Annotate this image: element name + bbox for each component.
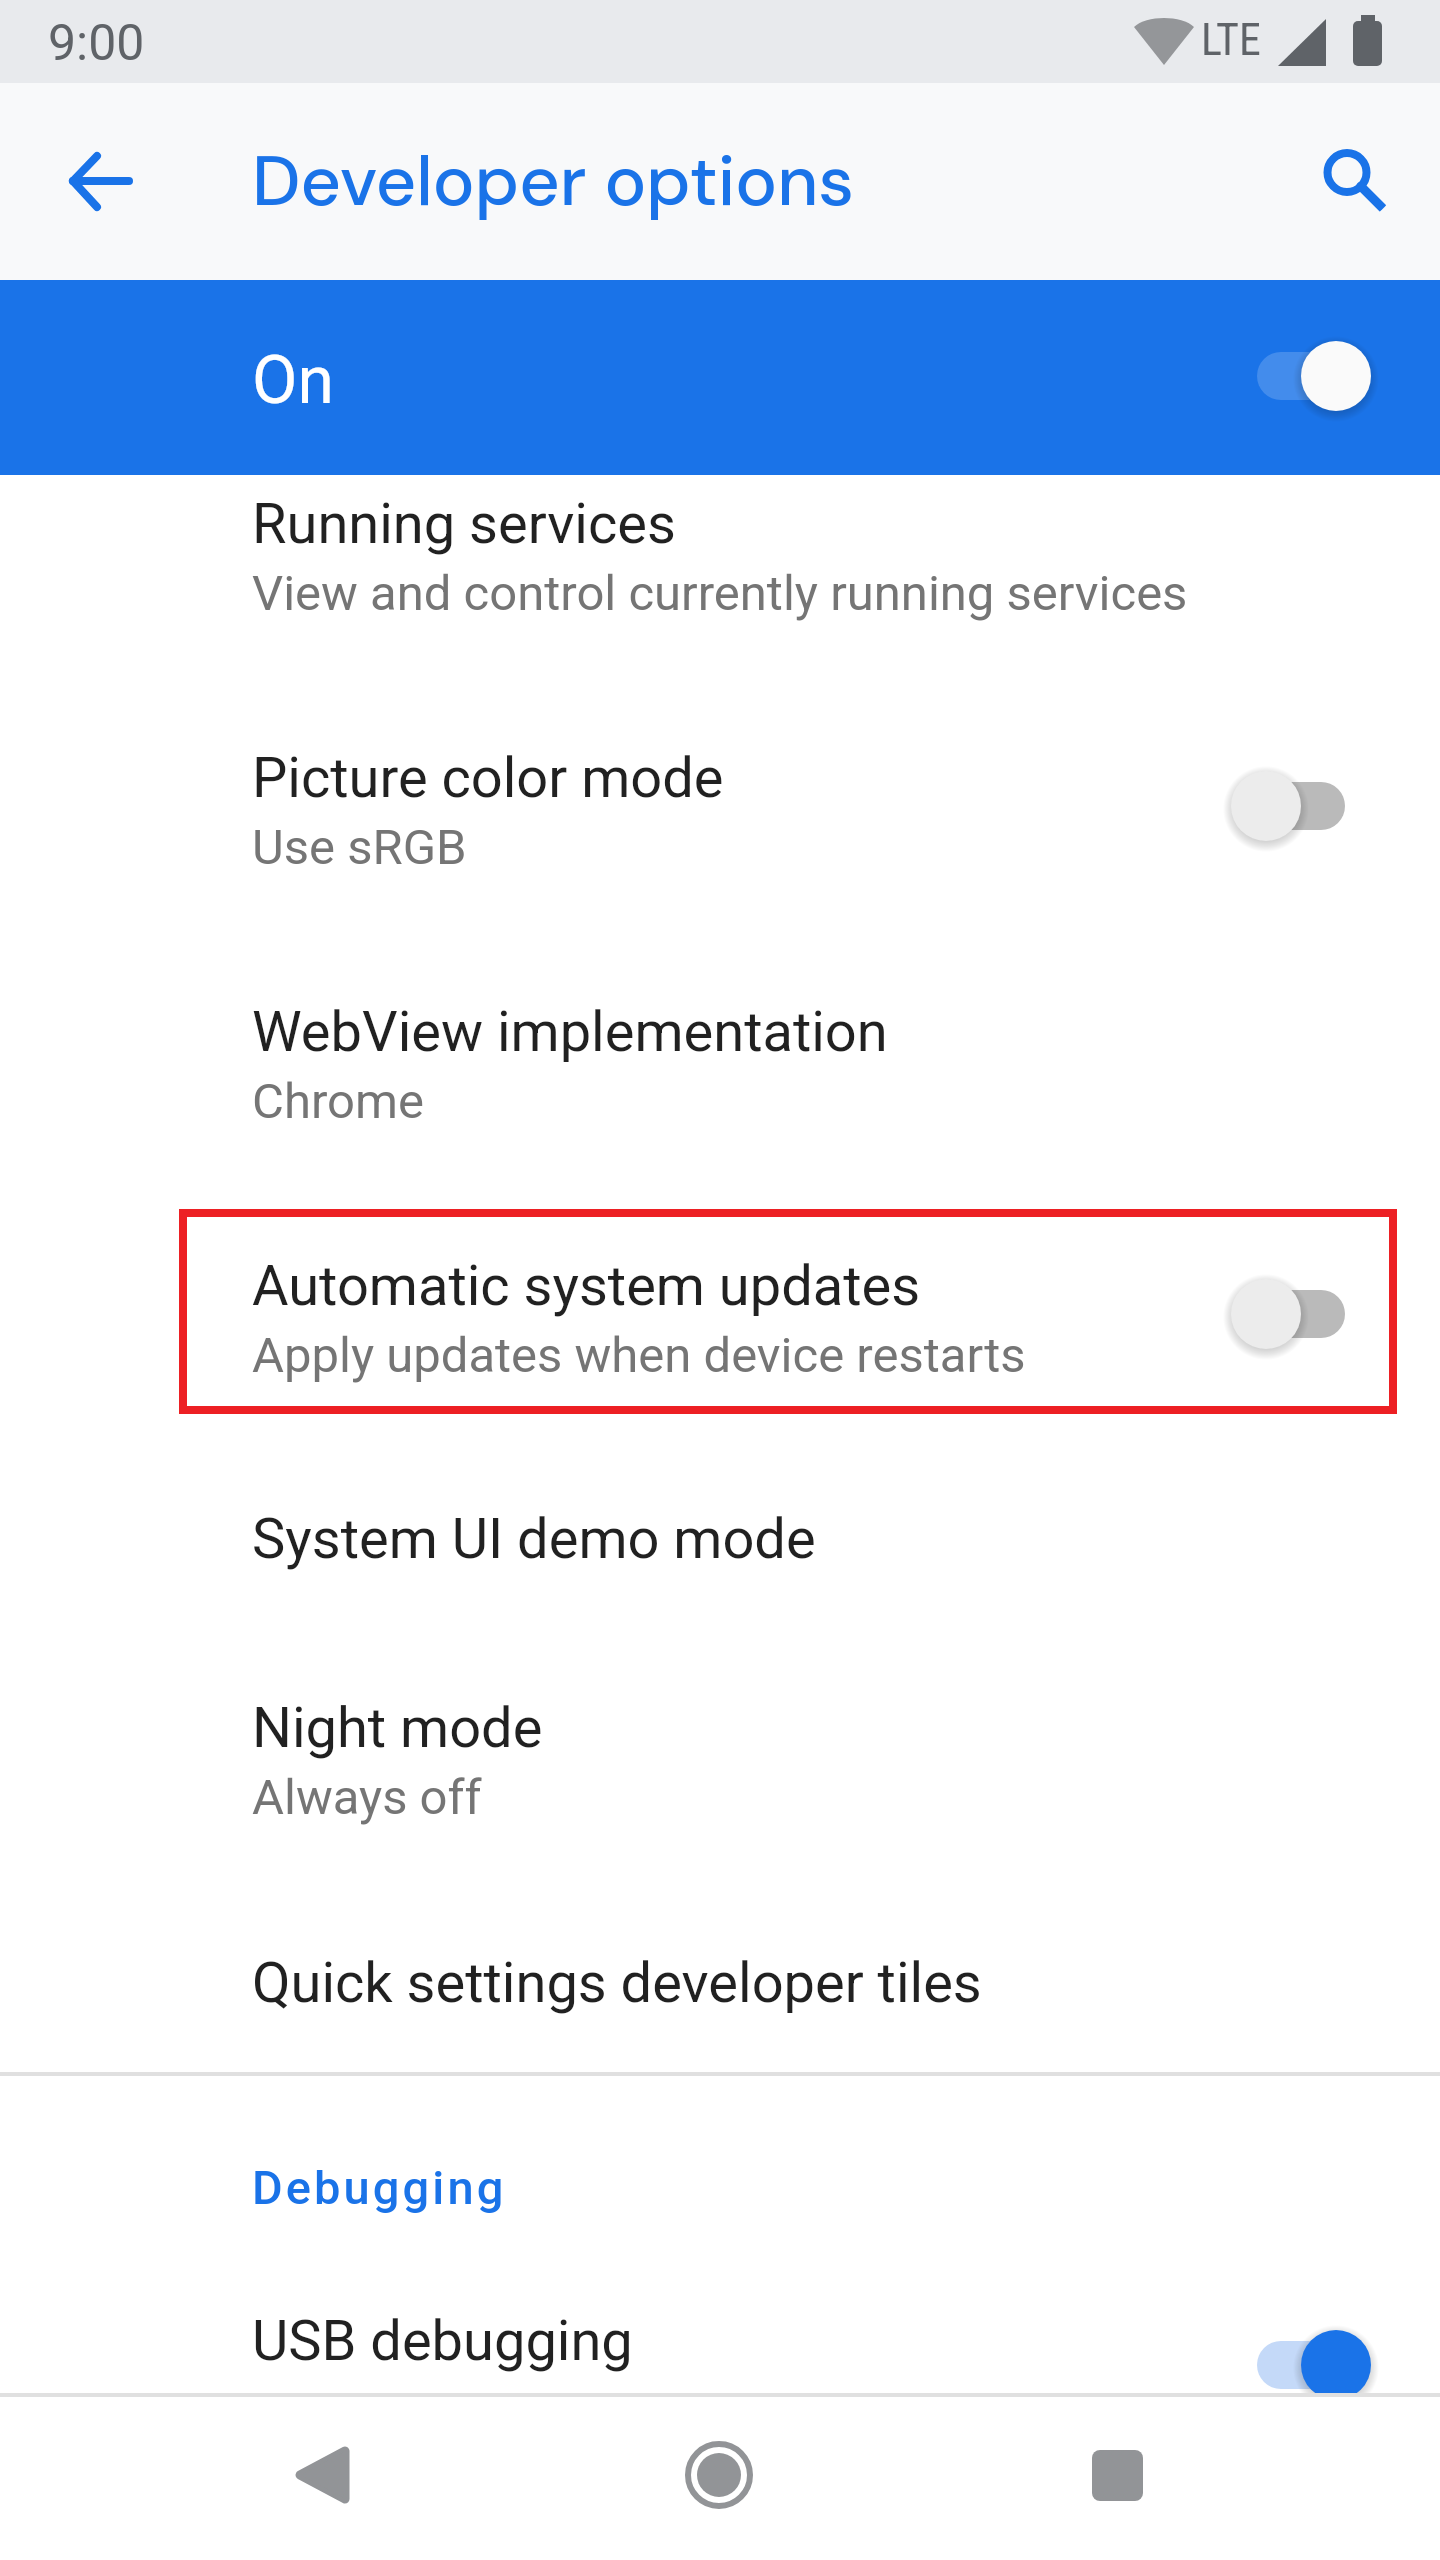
button[interactable]: USB debugging (0, 2258, 1440, 2393)
staticText: Apply updates when device restarts (252, 1327, 1026, 1384)
button[interactable]: Picture color mode (0, 695, 1440, 948)
staticText: Developer options (252, 136, 855, 227)
staticText: Picture color mode (252, 745, 724, 811)
staticText: Use sRGB (252, 819, 467, 876)
button[interactable]: Back (261, 2415, 381, 2535)
button[interactable]: Automatic system updates (0, 1203, 1440, 1456)
staticText: Always off (252, 1769, 482, 1826)
staticText: Quick settings developer tiles (252, 1950, 982, 2016)
staticText: WebView implementation (252, 999, 888, 1065)
staticText: System UI demo mode (252, 1506, 816, 1572)
staticText: Debugging (252, 2160, 507, 2215)
staticText: Running services (252, 491, 676, 557)
button[interactable]: Running services (0, 441, 1440, 694)
staticText: Night mode (252, 1695, 543, 1761)
staticText: 9:00 (48, 14, 145, 73)
button[interactable]: Search (1297, 124, 1397, 224)
button[interactable]: Toggle off (1210, 750, 1400, 862)
button[interactable]: Night mode (0, 1645, 1440, 1898)
button[interactable]: Quick settings developer tiles (0, 1900, 1440, 2072)
staticText: View and control currently running servi… (252, 565, 1188, 622)
button[interactable]: On (0, 280, 1440, 475)
button[interactable]: Back (48, 131, 148, 231)
button[interactable]: WebView implementation (0, 949, 1440, 1202)
staticText: Chrome (252, 1073, 424, 1130)
button[interactable]: Toggle off (1210, 1258, 1400, 1370)
staticText: USB debugging (252, 2308, 633, 2374)
staticText: On (252, 342, 334, 419)
button[interactable]: Toggle on (1210, 2309, 1400, 2421)
button[interactable]: Home (659, 2415, 779, 2535)
staticText: Automatic system updates (252, 1253, 921, 1319)
button[interactable]: Toggle on (1210, 320, 1400, 432)
staticText: LTE (1201, 14, 1261, 66)
button[interactable]: Recent apps (1057, 2415, 1177, 2535)
button[interactable]: System UI demo mode (0, 1456, 1440, 1644)
